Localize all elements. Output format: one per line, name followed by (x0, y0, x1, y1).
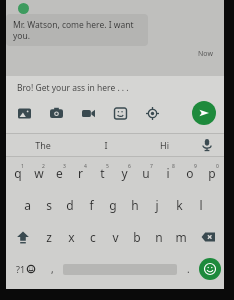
staticText: e (56, 165, 63, 181)
button[interactable]: Contact avatar (18, 3, 29, 14)
staticText: v (112, 229, 119, 245)
button[interactable]: 3 (49, 157, 70, 189)
staticText: b (133, 229, 141, 245)
staticText: y (121, 165, 128, 181)
button[interactable]: v (104, 221, 126, 253)
button[interactable]: 0 (201, 157, 223, 189)
button[interactable]: h (124, 189, 146, 221)
staticText: 7 (150, 163, 153, 170)
staticText: d (66, 197, 74, 213)
button[interactable]: l (190, 189, 212, 221)
staticText: x (68, 229, 75, 245)
staticText: 2 (42, 163, 45, 170)
staticText: 5 (106, 163, 109, 170)
staticText: 8 (172, 163, 175, 170)
button[interactable]: Insert image (15, 104, 33, 122)
button[interactable]: Hi (135, 133, 194, 157)
button[interactable]: Insert sticker (111, 104, 129, 122)
button[interactable]: Record video (79, 104, 97, 122)
staticText: ?1 (16, 263, 26, 275)
button[interactable]: s (38, 189, 59, 221)
staticText: 0 (216, 163, 219, 170)
staticText: c (90, 229, 96, 245)
button[interactable]: Share location (143, 104, 161, 122)
button[interactable]: k (168, 189, 190, 221)
button[interactable]: 4 (70, 157, 91, 189)
button[interactable]: m (170, 221, 192, 253)
button[interactable]: Send (192, 101, 216, 125)
staticText: Bro! Get your ass in here . . . (17, 82, 129, 94)
staticText: 4 (84, 163, 87, 170)
staticText: h (131, 197, 139, 213)
staticText: m (175, 229, 187, 245)
staticText: 6 (128, 163, 131, 170)
button[interactable]: I (76, 133, 135, 157)
staticText: r (78, 165, 83, 181)
staticText: Mr. Watson, come here. I want you. (13, 19, 141, 41)
staticText: i (166, 165, 170, 181)
button[interactable]: 7 (135, 157, 157, 189)
staticText: p (208, 165, 216, 181)
button[interactable]: 1 (7, 157, 28, 189)
staticText: . (187, 262, 190, 276)
button[interactable]: f (80, 189, 102, 221)
staticText: o (186, 165, 194, 181)
button[interactable]: Mr. Watson, come here. I want you. (6, 14, 148, 46)
staticText: 9 (194, 163, 197, 170)
button[interactable]: x (60, 221, 82, 253)
button[interactable]: , (41, 253, 63, 285)
staticText: , (51, 262, 54, 276)
button[interactable]: 5 (91, 157, 113, 189)
button[interactable]: ?1 (9, 253, 41, 285)
button[interactable]: . (177, 253, 199, 285)
staticText: I (104, 139, 108, 151)
button[interactable]: z (38, 221, 60, 253)
staticText: f (89, 197, 94, 213)
staticText: z (46, 229, 52, 245)
button[interactable]: 6 (113, 157, 135, 189)
staticText: j (155, 197, 159, 213)
staticText: 1 (21, 163, 24, 170)
button[interactable]: 8 (157, 157, 179, 189)
staticText: k (176, 197, 183, 213)
staticText: Hi (160, 139, 169, 151)
staticText: n (155, 229, 163, 245)
button[interactable]: Voice input (194, 133, 220, 157)
button[interactable]: Take photo (47, 104, 65, 122)
staticText: g (109, 197, 117, 213)
button[interactable]: Emoji (199, 258, 221, 280)
button[interactable]: Shift (7, 221, 38, 253)
staticText: a (24, 197, 31, 213)
staticText: u (142, 165, 150, 181)
staticText: t (100, 165, 105, 181)
staticText: Now (198, 49, 213, 59)
staticText: The (35, 139, 51, 151)
staticText: q (14, 165, 22, 181)
button[interactable]: n (148, 221, 170, 253)
staticText: 3 (63, 163, 66, 170)
button[interactable]: j (146, 189, 168, 221)
staticText: w (34, 165, 44, 181)
button[interactable]: d (59, 189, 80, 221)
button[interactable]: c (82, 221, 104, 253)
button[interactable]: 9 (179, 157, 201, 189)
button[interactable]: a (17, 189, 38, 221)
staticText: s (46, 197, 52, 213)
button[interactable]: The (10, 133, 76, 157)
button[interactable]: 2 (28, 157, 49, 189)
button[interactable]: g (102, 189, 124, 221)
staticText: l (199, 197, 203, 213)
button[interactable]: Backspace (192, 221, 223, 253)
button[interactable]: b (126, 221, 148, 253)
